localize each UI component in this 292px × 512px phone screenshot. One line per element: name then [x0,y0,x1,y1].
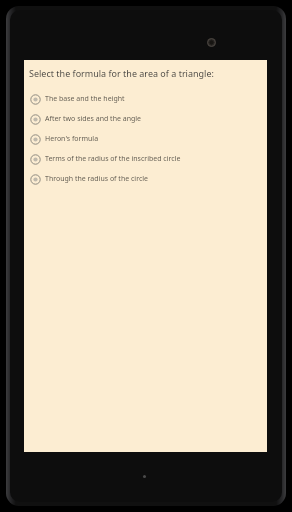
button[interactable]: The base and the height [24,89,267,109]
button[interactable]: After two sides and the angle [24,109,267,129]
staticText: After two sides and the angle [45,114,142,124]
button[interactable]: Heron's formula [24,129,267,149]
button[interactable]: Terms of the radius of the inscribed cir… [24,149,267,169]
staticText: Terms of the radius of the inscribed cir… [45,154,181,164]
staticText: Heron's formula [45,134,99,144]
staticText: Through the radius of the circle [45,174,149,184]
staticText: Select the formula for the area of a tri… [29,67,214,79]
button[interactable]: Through the radius of the circle [24,169,267,189]
staticText: The base and the height [45,94,125,104]
